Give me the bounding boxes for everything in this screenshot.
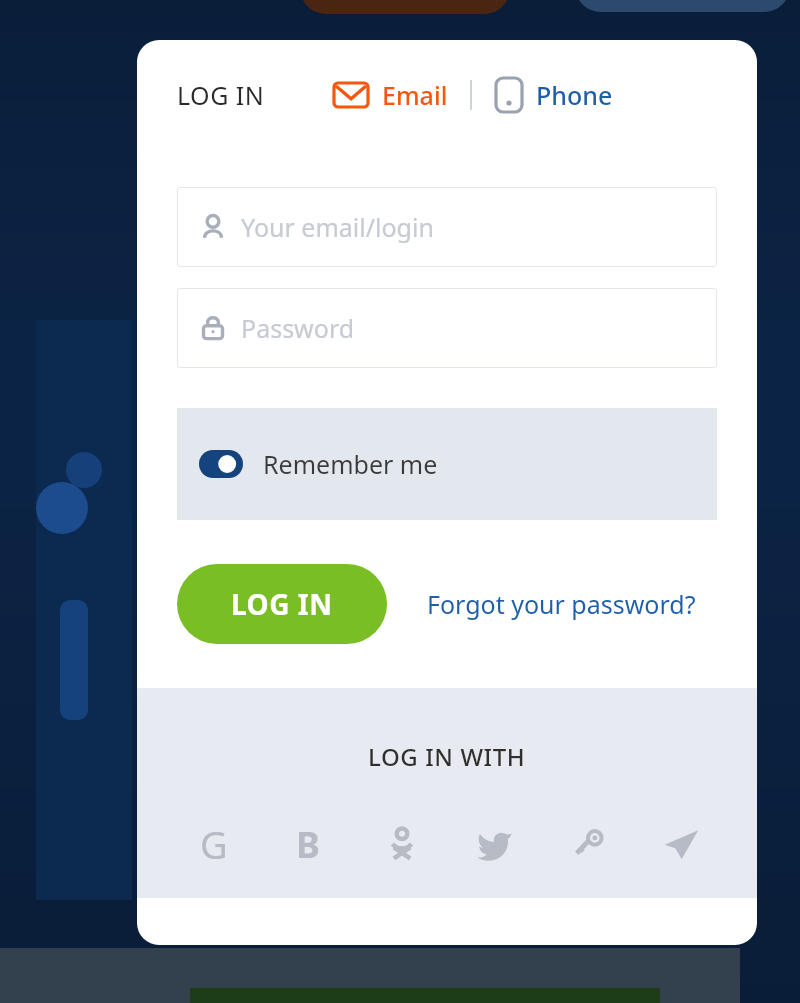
- button[interactable]: Remember me: [177, 408, 717, 520]
- button[interactable]: VK: [261, 816, 355, 872]
- staticText: Email: [382, 78, 448, 112]
- staticText: LOG IN WITH: [368, 740, 526, 773]
- button[interactable]: Telegram: [634, 816, 727, 872]
- staticText: Remember me: [263, 447, 438, 481]
- button[interactable]: Mail.ru: [541, 816, 634, 872]
- staticText: Phone: [536, 78, 613, 112]
- button[interactable]: Phone: [494, 76, 613, 114]
- button[interactable]: Your email/login: [177, 187, 717, 267]
- staticText: LOG IN: [231, 585, 333, 623]
- staticText: G: [200, 818, 228, 870]
- button[interactable]: LOG IN: [177, 564, 387, 644]
- staticText: LOG IN: [177, 78, 265, 112]
- staticText: B: [296, 820, 320, 869]
- button[interactable]: Email: [332, 78, 448, 112]
- button[interactable]: Odnoklassniki: [355, 816, 448, 872]
- staticText: Your email/login: [241, 210, 434, 244]
- button[interactable]: Password: [177, 288, 717, 368]
- staticText: Forgot your password?: [427, 587, 696, 621]
- button[interactable]: Forgot your password?: [427, 587, 696, 621]
- button[interactable]: Twitter: [448, 816, 541, 872]
- staticText: Password: [241, 311, 355, 345]
- button[interactable]: Google: [167, 816, 261, 872]
